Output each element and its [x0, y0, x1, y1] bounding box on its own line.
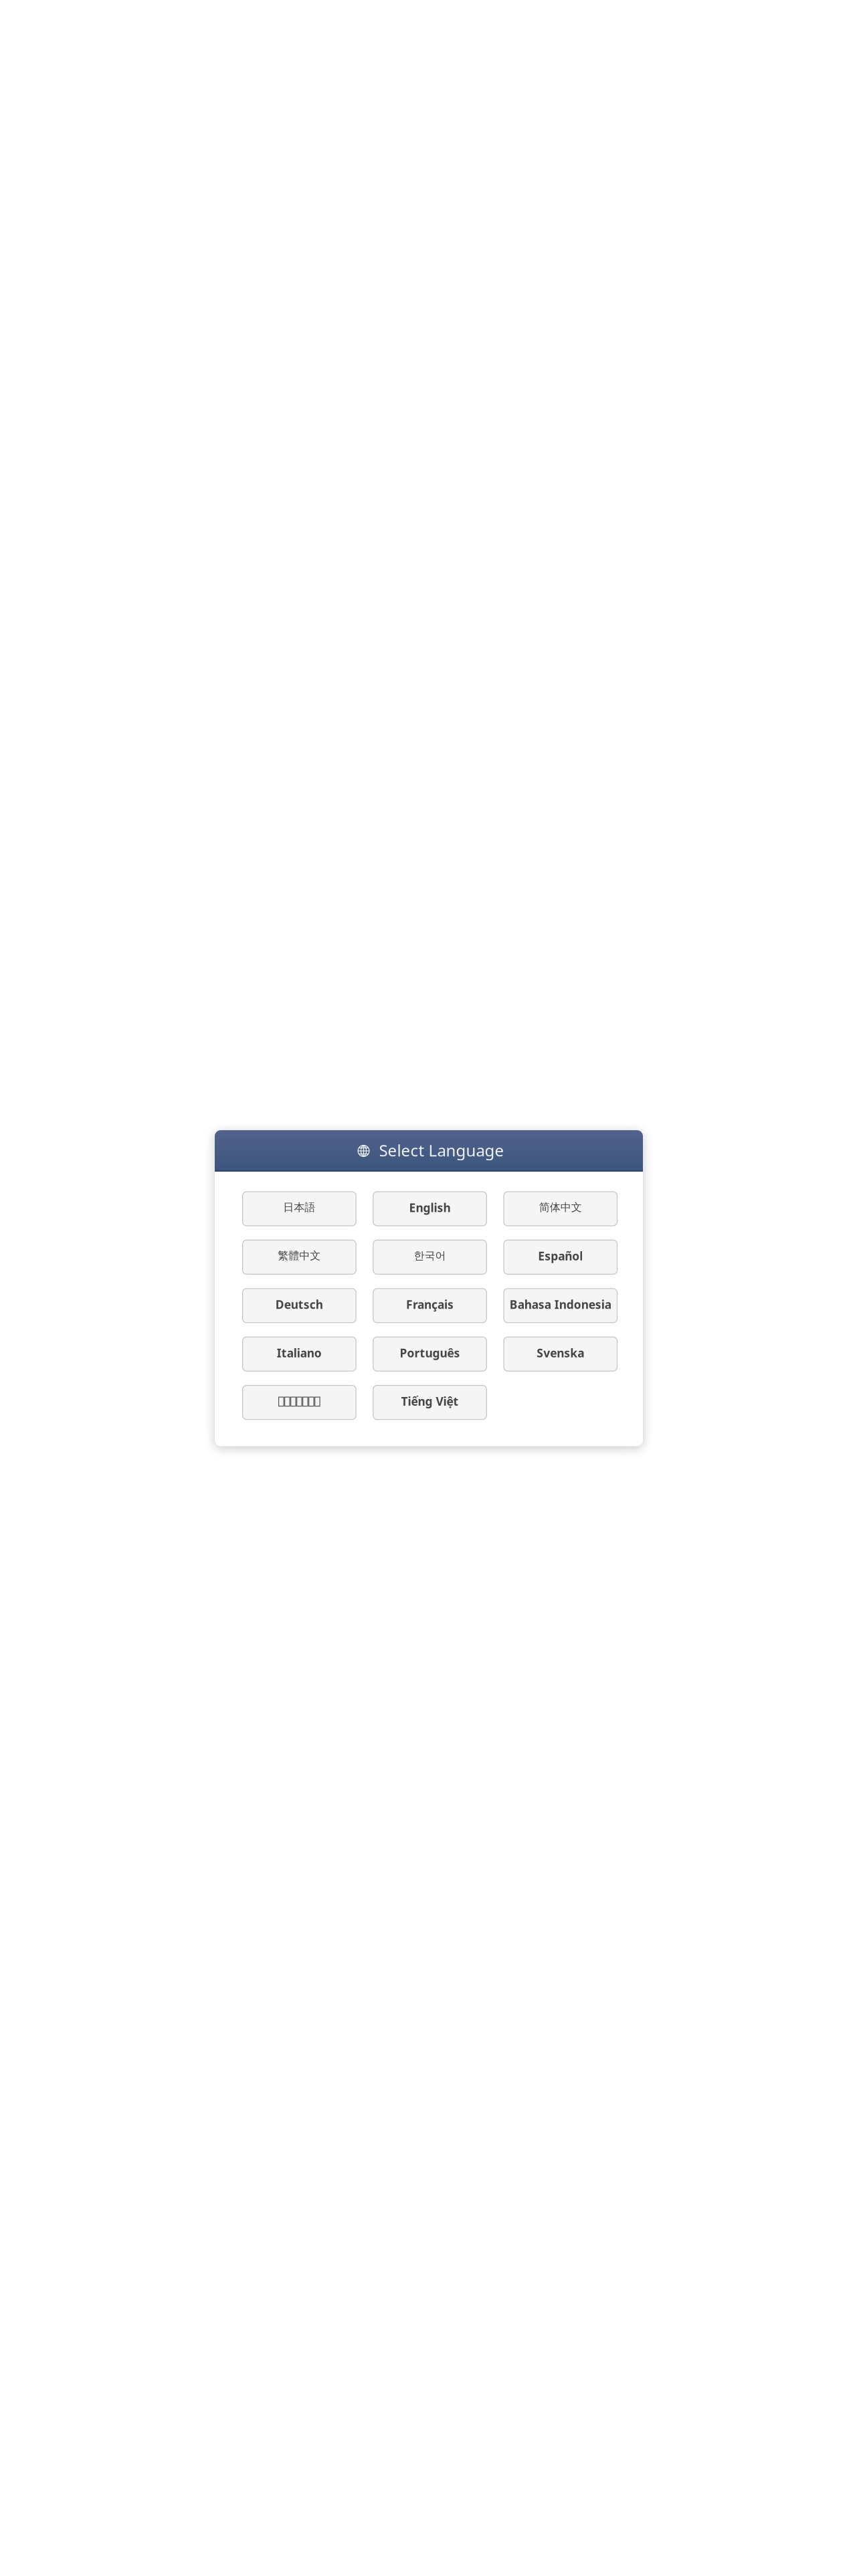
button[interactable]: English — [373, 1192, 487, 1226]
staticText: English — [409, 1200, 451, 1215]
staticText: Bahasa Indonesia — [510, 1296, 611, 1312]
button[interactable]: Svenska — [504, 1337, 617, 1371]
staticText: Português — [400, 1345, 460, 1361]
staticText: Svenska — [537, 1345, 584, 1361]
button[interactable]: 日本語 — [243, 1192, 356, 1226]
staticText: Deutsch — [276, 1296, 323, 1312]
button[interactable]: Bahasa Indonesia — [504, 1289, 617, 1323]
staticText: Select Language — [379, 1139, 504, 1161]
button[interactable]: Español — [504, 1240, 617, 1274]
staticText: Español — [538, 1248, 583, 1264]
button[interactable]: Italiano — [243, 1337, 356, 1371]
button[interactable]: ภาษาไทย — [243, 1385, 356, 1419]
staticText: 简体中文 — [539, 1201, 582, 1214]
staticText: Français — [406, 1296, 454, 1312]
staticText: 한국어 — [414, 1249, 446, 1262]
button[interactable]: Français — [373, 1289, 487, 1323]
button[interactable]: Português — [373, 1337, 487, 1371]
button[interactable]: 繁體中文 — [243, 1240, 356, 1274]
staticText: Tiếng Việt — [401, 1393, 459, 1409]
button[interactable]: Tiếng Việt — [373, 1385, 487, 1419]
staticText: 繁體中文 — [278, 1249, 321, 1262]
button[interactable]: 한국어 — [373, 1240, 487, 1274]
staticText: Italiano — [277, 1345, 322, 1361]
button[interactable]: 简体中文 — [504, 1192, 617, 1226]
button[interactable]: Deutsch — [243, 1289, 356, 1323]
staticText: 日本語 — [283, 1201, 315, 1214]
